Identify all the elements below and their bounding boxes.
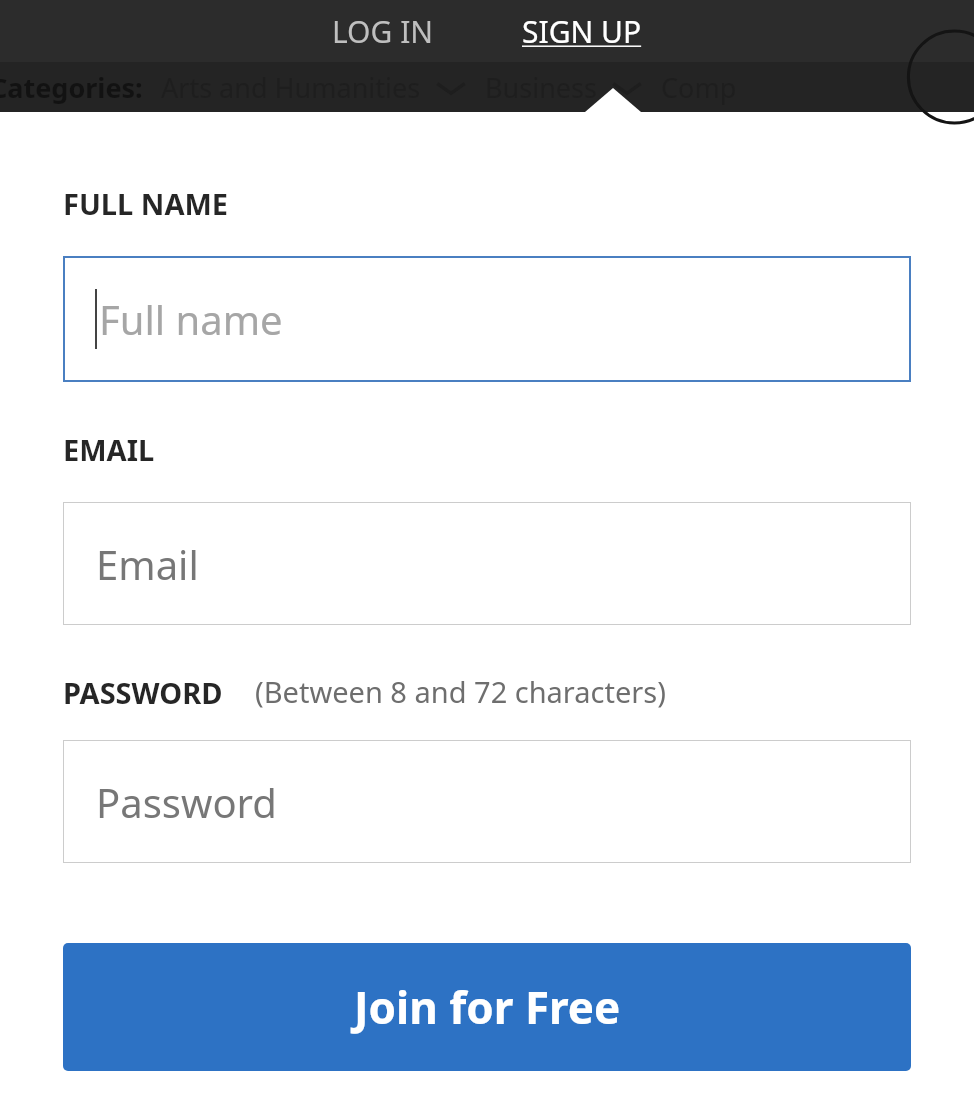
button[interactable]: Full name (63, 256, 911, 382)
staticText: EMAIL (63, 430, 155, 469)
staticText: LOG IN (332, 11, 434, 52)
button[interactable]: Business (485, 69, 645, 106)
button[interactable]: SIGN UP (512, 7, 652, 56)
staticText: Join for Free (354, 977, 621, 1037)
staticText: SIGN UP (522, 11, 642, 52)
button[interactable]: LOG IN (322, 7, 444, 56)
staticText: Categories: (0, 69, 143, 106)
staticText: Full name (99, 292, 283, 346)
staticText: PASSWORD (63, 673, 223, 712)
staticText: Password (96, 775, 277, 829)
button[interactable]: Join for Free (63, 943, 911, 1071)
staticText: Business (485, 69, 597, 106)
button[interactable]: Email (63, 502, 911, 625)
staticText: (Between 8 and 72 characters) (255, 672, 666, 711)
staticText: Email (96, 537, 199, 591)
button[interactable]: Password (63, 740, 911, 863)
staticText: FULL NAME (63, 184, 229, 223)
